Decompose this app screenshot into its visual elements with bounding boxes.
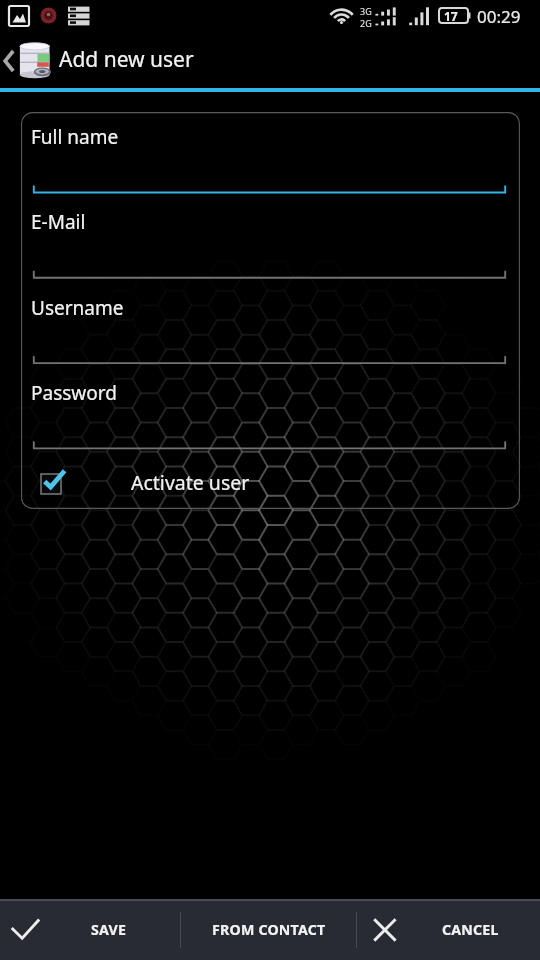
staticText: Password: [31, 380, 117, 406]
button[interactable]: FROM CONTACT: [181, 899, 356, 960]
staticText: SAVE: [91, 920, 127, 939]
button[interactable]: Activate user: [21, 459, 520, 505]
staticText: E-Mail: [31, 209, 86, 235]
staticText: Username: [31, 295, 124, 321]
staticText: CANCEL: [442, 920, 499, 939]
staticText: 17: [444, 8, 458, 24]
staticText: 00:29: [477, 5, 521, 28]
button[interactable]: SAVE: [0, 899, 180, 960]
staticText: 3G: [360, 5, 372, 17]
staticText: FROM CONTACT: [212, 920, 326, 939]
button[interactable]: Activate user: [36, 467, 66, 497]
staticText: Full name: [31, 124, 119, 150]
button[interactable]: E-Mail: [21, 209, 520, 279]
button[interactable]: Username: [21, 295, 520, 365]
staticText: 2G: [360, 17, 372, 29]
button[interactable]: CANCEL: [357, 899, 540, 960]
staticText: Activate user: [131, 469, 250, 496]
staticText: Add new user: [59, 45, 194, 74]
button[interactable]: Full name: [21, 124, 520, 194]
button[interactable]: Back: [0, 33, 18, 88]
button[interactable]: Password: [21, 380, 520, 450]
